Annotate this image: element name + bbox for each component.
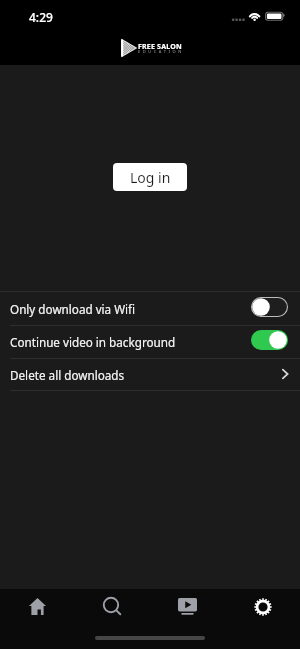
- staticText: 4:29: [29, 9, 53, 25]
- other: Open: [279, 367, 291, 381]
- staticText: FREE SALON: [138, 42, 182, 52]
- staticText: E D U C A T I O N: [138, 49, 182, 54]
- button[interactable]: Continue video in background: [0, 326, 300, 358]
- button[interactable]: Only download via Wifi: [0, 292, 300, 325]
- button[interactable]: On: [251, 330, 288, 350]
- button[interactable]: Search: [75, 589, 150, 624]
- staticText: Log in: [130, 168, 171, 187]
- button[interactable]: Videos: [150, 589, 225, 624]
- button[interactable]: Settings: [225, 589, 300, 624]
- button[interactable]: Home: [0, 589, 75, 624]
- button[interactable]: Off: [251, 297, 288, 317]
- staticText: Only download via Wifi: [10, 301, 136, 317]
- staticText: Delete all downloads: [10, 367, 125, 383]
- button[interactable]: Log in: [113, 163, 187, 191]
- staticText: Continue video in background: [10, 334, 176, 350]
- button[interactable]: Delete all downloads: [0, 359, 300, 390]
